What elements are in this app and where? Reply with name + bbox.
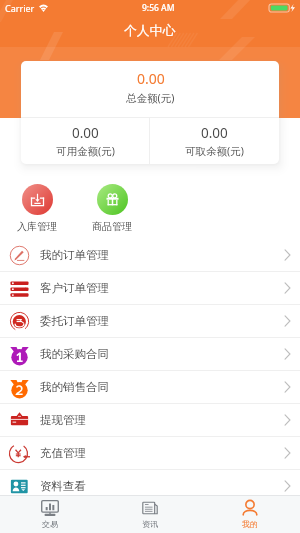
button[interactable]: 我的销售合同 bbox=[0, 371, 300, 403]
staticText: 商品管理 bbox=[92, 220, 132, 233]
staticText: 我的订单管理 bbox=[40, 248, 109, 262]
staticText: 0.00 bbox=[137, 69, 165, 88]
button[interactable]: 入库管理 bbox=[12, 184, 62, 233]
staticText: 我的 bbox=[242, 519, 258, 529]
button[interactable]: 我的采购合同 bbox=[0, 338, 300, 370]
button[interactable]: 交易 bbox=[0, 496, 100, 533]
staticText: 资料查看 bbox=[40, 479, 86, 493]
button[interactable]: 资讯 bbox=[100, 496, 200, 533]
button[interactable]: 我的 bbox=[200, 496, 300, 533]
staticText: 个人中心 bbox=[124, 23, 176, 39]
staticText: 我的销售合同 bbox=[40, 380, 109, 394]
button[interactable]: 充值管理 bbox=[0, 437, 300, 469]
staticText: 总金额(元) bbox=[126, 91, 175, 105]
staticText: 入库管理 bbox=[17, 220, 57, 233]
staticText: 客户订单管理 bbox=[40, 281, 109, 295]
button[interactable]: 我的订单管理 bbox=[0, 239, 300, 271]
button[interactable]: 委托订单管理 bbox=[0, 305, 300, 337]
staticText: 可用金额(元) bbox=[56, 144, 115, 158]
staticText: Carrier bbox=[5, 2, 35, 14]
staticText: 充值管理 bbox=[40, 446, 86, 460]
staticText: 可取余额(元) bbox=[185, 144, 244, 158]
staticText: 9:56 AM bbox=[142, 2, 175, 14]
button[interactable]: 客户订单管理 bbox=[0, 272, 300, 304]
staticText: 委托订单管理 bbox=[40, 314, 109, 328]
staticText: 0.00 bbox=[201, 124, 228, 142]
staticText: 我的采购合同 bbox=[40, 347, 109, 361]
staticText: 0.00 bbox=[72, 124, 99, 142]
button[interactable]: 资料查看 bbox=[0, 470, 300, 502]
staticText: 资讯 bbox=[142, 519, 158, 529]
staticText: 提现管理 bbox=[40, 413, 86, 427]
staticText: 交易 bbox=[42, 519, 58, 529]
button[interactable]: 商品管理 bbox=[87, 184, 137, 233]
button[interactable]: 提现管理 bbox=[0, 404, 300, 436]
